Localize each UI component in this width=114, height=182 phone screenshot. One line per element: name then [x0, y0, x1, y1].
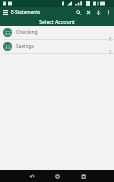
button[interactable]: Search: [73, 7, 83, 17]
button[interactable]: Recent apps: [76, 170, 90, 182]
button[interactable]: Close: [83, 7, 93, 17]
staticText: Checking: [16, 29, 38, 36]
button[interactable]: Back: [24, 170, 38, 182]
button[interactable]: Home: [50, 170, 64, 182]
button[interactable]: Checking: [0, 26, 114, 39]
staticText: Select Account: [39, 18, 75, 25]
staticText: E-Statements: [11, 9, 41, 15]
button[interactable]: Open navigation menu: [0, 7, 10, 17]
button[interactable]: Voice search: [93, 7, 103, 17]
staticText: Savings: [16, 43, 34, 50]
button[interactable]: More options: [103, 7, 113, 17]
button[interactable]: Savings: [0, 40, 114, 53]
